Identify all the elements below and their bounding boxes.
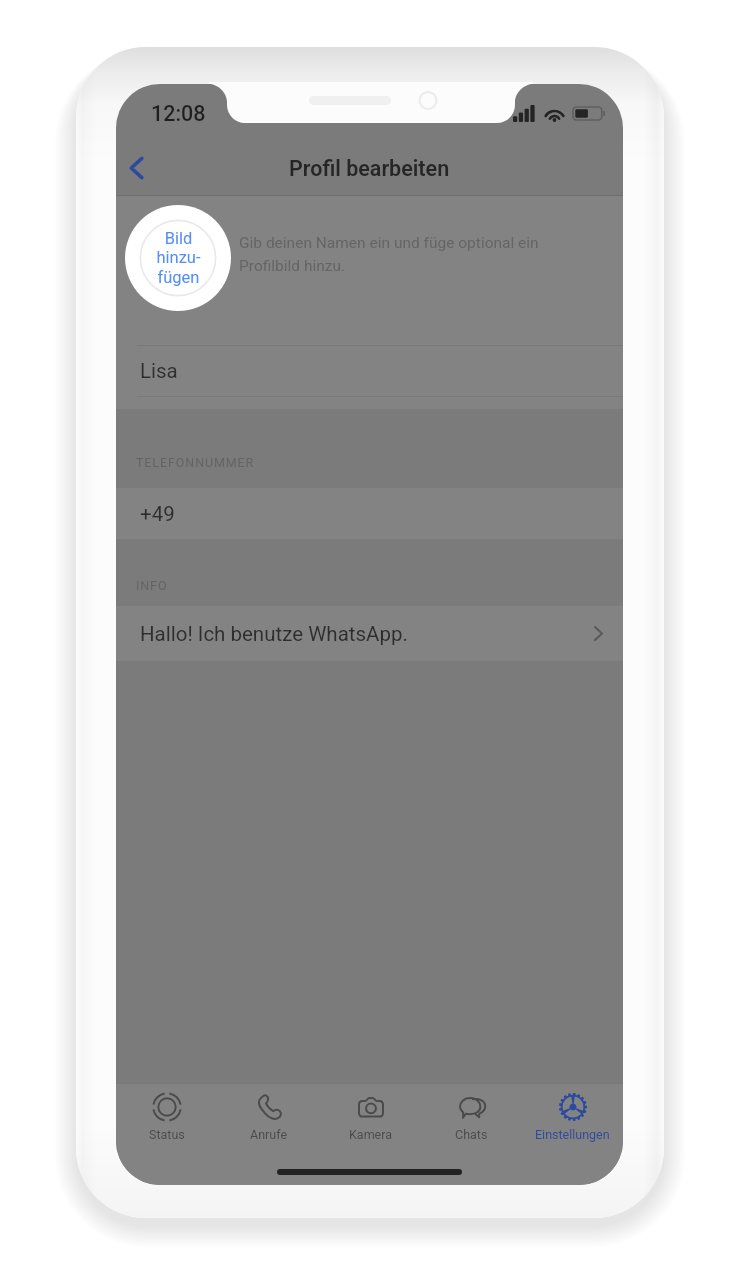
button[interactable]: Hallo! Ich benutze WhatsApp. bbox=[116, 606, 623, 661]
staticText: Gib deinen Namen ein und füge optional e… bbox=[239, 234, 539, 275]
button[interactable]: +49 bbox=[116, 488, 623, 539]
staticText: Anrufe bbox=[250, 1127, 288, 1142]
staticText: TELEFONNUMMER bbox=[136, 455, 255, 470]
staticText: Chats bbox=[455, 1127, 488, 1142]
staticText: 12:08 bbox=[151, 101, 206, 126]
staticText: Bild hinzu- fügen bbox=[156, 229, 201, 287]
staticText: Einstellungen bbox=[535, 1127, 610, 1142]
staticText: Lisa bbox=[140, 359, 178, 383]
staticText: Hallo! Ich benutze WhatsApp. bbox=[140, 622, 408, 646]
button[interactable]: Status bbox=[116, 1092, 218, 1142]
button[interactable]: Kamera bbox=[320, 1092, 421, 1142]
button[interactable]: Anrufe bbox=[218, 1092, 320, 1142]
staticText: Profil bearbeiten bbox=[289, 156, 450, 181]
button[interactable]: Chats bbox=[421, 1092, 522, 1142]
staticText: Kamera bbox=[349, 1127, 393, 1142]
button[interactable]: Bild hinzu- fügen bbox=[125, 205, 231, 311]
button[interactable]: Lisa bbox=[116, 345, 623, 396]
staticText: INFO bbox=[136, 578, 168, 593]
button[interactable]: Einstellungen bbox=[522, 1092, 623, 1142]
staticText: +49 bbox=[140, 502, 175, 526]
staticText: Status bbox=[149, 1127, 185, 1142]
button[interactable]: Back bbox=[116, 145, 160, 191]
